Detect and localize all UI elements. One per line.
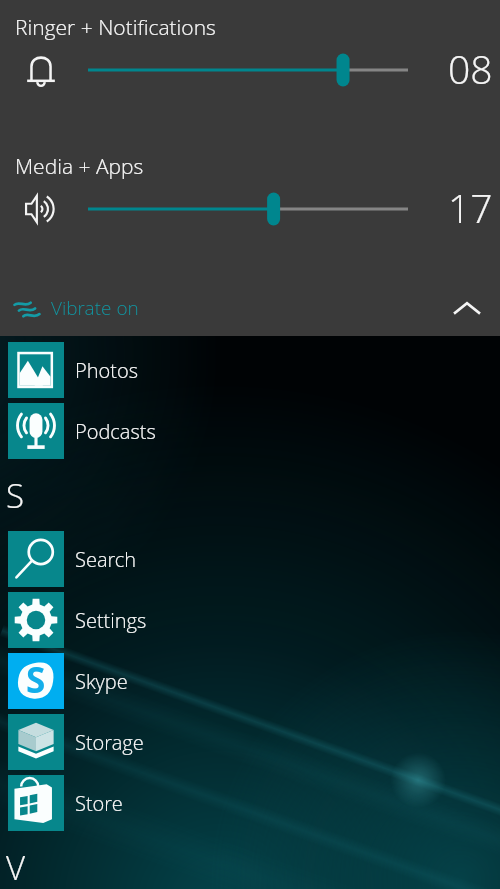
staticText: V bbox=[6, 845, 26, 887]
staticText: S bbox=[6, 473, 24, 515]
staticText: Storage bbox=[75, 729, 144, 756]
button[interactable]: Vibrate on bbox=[0, 283, 500, 333]
button[interactable]: V bbox=[0, 845, 500, 887]
button[interactable]: Search bbox=[0, 531, 500, 587]
staticText: Search bbox=[75, 546, 137, 573]
staticText: Vibrate on bbox=[51, 295, 139, 321]
staticText: 08 bbox=[448, 42, 493, 86]
button[interactable]: Podcasts bbox=[0, 403, 500, 459]
button[interactable]: S bbox=[0, 473, 500, 515]
button[interactable]: Storage bbox=[0, 714, 500, 770]
button[interactable]: Photos bbox=[0, 342, 500, 398]
staticText: Media + Apps bbox=[15, 152, 144, 181]
staticText: S bbox=[26, 656, 46, 704]
staticText: Store bbox=[75, 790, 123, 817]
staticText: 17 bbox=[448, 181, 493, 225]
button[interactable]: Collapse bbox=[441, 283, 491, 333]
button[interactable]: Store bbox=[0, 775, 500, 831]
button[interactable]: Settings bbox=[0, 592, 500, 648]
staticText: Photos bbox=[75, 357, 138, 384]
staticText: Settings bbox=[75, 607, 147, 634]
staticText: Ringer + Notifications bbox=[15, 13, 216, 42]
button[interactable]: S bbox=[0, 653, 500, 709]
staticText: Podcasts bbox=[75, 418, 156, 445]
staticText: Skype bbox=[75, 668, 128, 695]
